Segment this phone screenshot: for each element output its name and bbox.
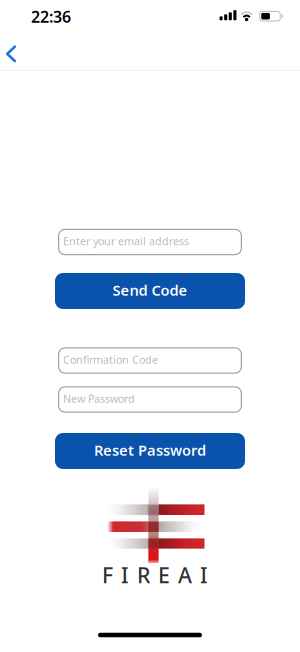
staticText: A: [178, 561, 192, 589]
button[interactable]: Send Code: [55, 273, 245, 309]
staticText: I: [200, 561, 208, 589]
button[interactable]: Reset Password: [55, 433, 245, 469]
staticText: Reset Password: [94, 440, 206, 460]
staticText: Enter your email address: [63, 234, 189, 248]
staticText: 22:36: [31, 6, 71, 27]
staticText: I: [121, 561, 129, 589]
staticText: New Password: [63, 391, 135, 406]
staticText: F: [102, 561, 113, 589]
staticText: Send Code: [112, 280, 187, 300]
staticText: Confirmation Code: [63, 352, 158, 367]
button[interactable]: Back: [1, 40, 25, 66]
staticText: R: [137, 561, 150, 589]
staticText: E: [158, 561, 170, 589]
